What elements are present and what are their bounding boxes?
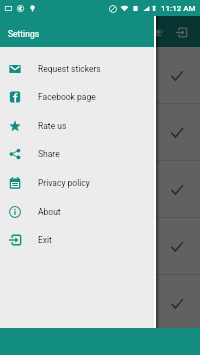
button[interactable]: Share [0,139,156,168]
button[interactable]: Facebook page [0,82,156,111]
staticText: Privacy policy [38,178,90,188]
staticText: Facebook page [38,92,96,102]
button[interactable] [0,47,200,104]
staticText: Share [38,149,60,159]
button[interactable] [0,104,200,161]
button[interactable]: Request stickers [0,54,156,83]
staticText: Request stickers [38,64,101,74]
button[interactable] [0,275,200,332]
button[interactable] [0,161,200,218]
button[interactable]: Buy me a coffee [147,21,169,43]
staticText: Settings [8,29,40,39]
button[interactable] [0,218,200,275]
staticText: Exit [38,235,52,245]
button[interactable]: Privacy policy [0,168,156,197]
staticText: 11:12 AM [161,4,196,13]
button[interactable]: Rate us [0,111,156,140]
staticText: About [38,207,61,217]
button[interactable]: Exit [0,225,156,254]
button[interactable]: Sign out [170,21,192,43]
button[interactable]: About [0,197,156,226]
staticText: Rate us [38,121,67,131]
